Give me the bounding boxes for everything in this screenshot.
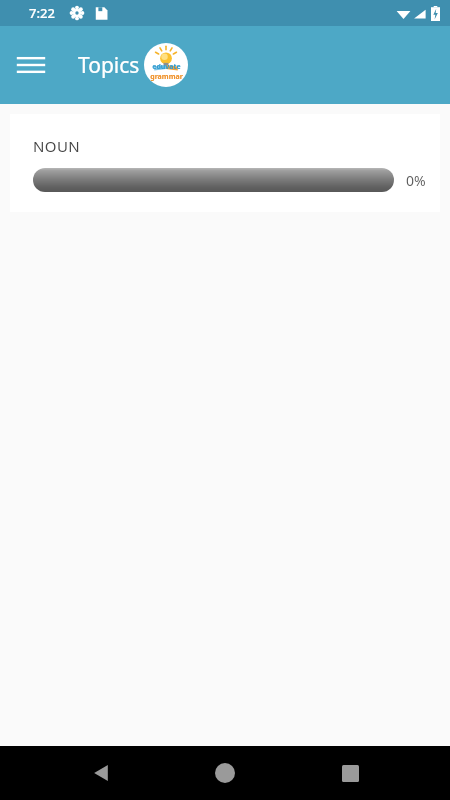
staticText: eduvate [152, 62, 181, 72]
staticText: grammar [150, 72, 183, 82]
staticText: NOUN [33, 136, 81, 156]
button[interactable]: NOUN [10, 114, 440, 212]
staticText: Topics [78, 51, 140, 80]
button[interactable]: Home [201, 749, 249, 797]
button[interactable]: Recent apps [326, 749, 374, 797]
staticText: 0% [406, 171, 426, 190]
button[interactable]: Open navigation drawer [10, 44, 52, 86]
button[interactable]: Back [77, 749, 125, 797]
staticText: 7:22 [29, 4, 55, 22]
